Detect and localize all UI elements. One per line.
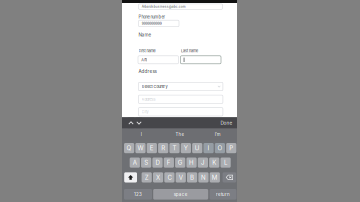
button[interactable]: Arti bbox=[138, 56, 178, 64]
staticText: I bbox=[208, 144, 210, 152]
button[interactable]: S bbox=[141, 157, 151, 168]
button[interactable]: Address bbox=[138, 95, 223, 103]
button[interactable]: A bbox=[130, 157, 140, 168]
staticText: Z bbox=[145, 174, 149, 181]
button[interactable]: Done bbox=[220, 117, 237, 129]
button[interactable]: R bbox=[158, 143, 168, 153]
button[interactable]: B bbox=[187, 172, 197, 182]
button[interactable]: Select Country bbox=[138, 82, 223, 91]
button[interactable]: Arbaidsbusiness@abc.com bbox=[138, 4, 222, 9]
staticText: M bbox=[212, 174, 218, 181]
staticText: N bbox=[201, 174, 206, 181]
button[interactable]: F bbox=[164, 157, 174, 168]
staticText: G bbox=[178, 159, 183, 166]
staticText: K bbox=[212, 159, 216, 166]
staticText: I bbox=[141, 132, 142, 137]
button[interactable]: G bbox=[175, 157, 185, 168]
staticText: T bbox=[172, 144, 176, 152]
button[interactable]: Delete bbox=[223, 172, 236, 182]
staticText: Arbaidsbusiness@abc.com bbox=[142, 5, 186, 8]
staticText: P bbox=[229, 144, 233, 152]
button[interactable]: 123 bbox=[124, 189, 152, 200]
staticText: Address bbox=[138, 69, 156, 74]
button[interactable]: N bbox=[198, 172, 208, 182]
staticText: Last name bbox=[181, 49, 198, 53]
button[interactable]: K bbox=[209, 157, 219, 168]
button[interactable]: space bbox=[153, 189, 208, 200]
staticText: Phone number bbox=[138, 15, 165, 20]
button[interactable]: X bbox=[153, 172, 163, 182]
staticText: Y bbox=[184, 144, 188, 152]
button[interactable]: E bbox=[147, 143, 157, 153]
staticText: O bbox=[217, 144, 222, 152]
button[interactable]: Z bbox=[142, 172, 152, 182]
button[interactable]: U bbox=[192, 143, 202, 153]
staticText: City bbox=[142, 109, 149, 114]
button[interactable]: Next field bbox=[135, 118, 143, 128]
button[interactable]: C bbox=[164, 172, 174, 182]
button[interactable]: L bbox=[220, 157, 231, 168]
staticText: U bbox=[195, 144, 200, 152]
button[interactable]: H bbox=[186, 157, 197, 168]
button[interactable]: J bbox=[198, 157, 208, 168]
button[interactable]: Shift bbox=[124, 172, 137, 182]
button[interactable]: I'm bbox=[199, 129, 237, 140]
staticText: Done bbox=[220, 120, 232, 126]
button[interactable]: return bbox=[210, 189, 236, 200]
staticText: H bbox=[189, 159, 194, 166]
staticText: R bbox=[161, 144, 165, 152]
button[interactable]: Q bbox=[124, 143, 134, 153]
staticText: V bbox=[179, 174, 183, 181]
staticText: B bbox=[190, 174, 194, 181]
staticText: The bbox=[175, 132, 183, 137]
staticText: X bbox=[156, 174, 160, 181]
button[interactable]: Previous field bbox=[127, 118, 135, 128]
button[interactable]: M bbox=[210, 172, 220, 182]
staticText: Address bbox=[142, 97, 156, 102]
staticText: space bbox=[174, 192, 188, 197]
staticText: S bbox=[144, 159, 148, 166]
button[interactable]: P bbox=[226, 143, 236, 153]
button[interactable]: W bbox=[135, 143, 146, 153]
staticText: W bbox=[137, 144, 143, 152]
staticText: J bbox=[201, 159, 205, 166]
button[interactable]: T bbox=[169, 143, 180, 153]
staticText: E bbox=[150, 144, 154, 152]
staticText: Arti bbox=[141, 57, 147, 62]
staticText: First name bbox=[138, 49, 155, 53]
button[interactable]: The bbox=[160, 129, 199, 140]
button[interactable]: 9999999999 bbox=[138, 20, 179, 27]
button[interactable]: I bbox=[122, 129, 160, 140]
button[interactable]: O bbox=[215, 143, 225, 153]
staticText: C bbox=[167, 174, 171, 181]
button[interactable]: V bbox=[176, 172, 186, 182]
button[interactable]: Y bbox=[181, 143, 191, 153]
staticText: F bbox=[167, 159, 171, 166]
staticText: A bbox=[133, 159, 137, 166]
button[interactable]: City bbox=[138, 108, 223, 116]
staticText: 9999999999 bbox=[142, 21, 162, 25]
staticText: L bbox=[224, 159, 227, 166]
staticText: Name bbox=[138, 32, 151, 38]
staticText: Q bbox=[127, 144, 132, 152]
button[interactable] bbox=[180, 56, 221, 64]
staticText: return bbox=[216, 192, 230, 197]
button[interactable]: I bbox=[203, 143, 214, 153]
staticText: Select Country bbox=[142, 84, 168, 89]
staticText: 123 bbox=[134, 192, 142, 197]
staticText: D bbox=[155, 159, 159, 166]
staticText: I'm bbox=[215, 132, 221, 137]
button[interactable]: D bbox=[152, 157, 163, 168]
